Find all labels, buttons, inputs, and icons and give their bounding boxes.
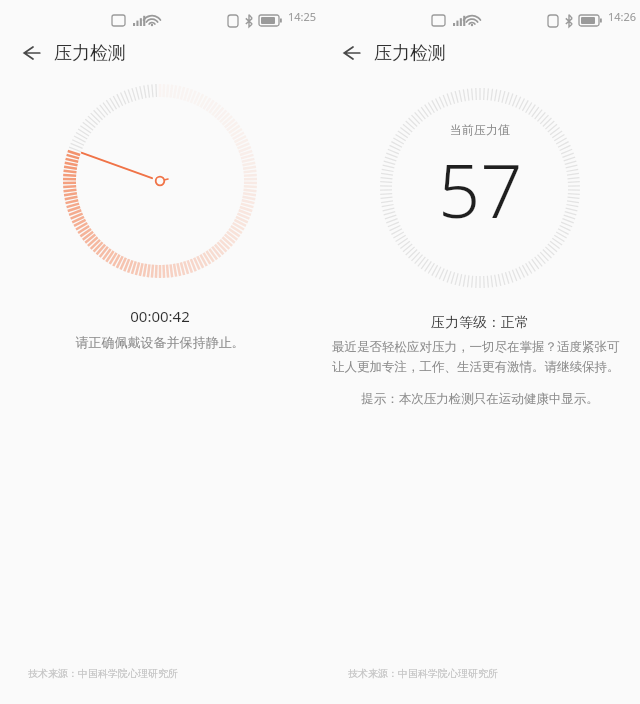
staticText: 14:25: [288, 9, 317, 24]
staticText: 技术来源：中国科学院心理研究所: [348, 667, 640, 680]
staticText: 压力等级：正常: [320, 314, 640, 332]
staticText: 14:26: [608, 9, 637, 24]
staticText: 技术来源：中国科学院心理研究所: [28, 667, 320, 680]
staticText: 57: [438, 139, 523, 240]
button[interactable]: 返回: [334, 36, 368, 70]
staticText: 压力检测: [54, 42, 126, 65]
staticText: 00:00:42: [0, 306, 320, 326]
button[interactable]: 返回: [14, 36, 48, 70]
staticText: 提示：本次压力检测只在运动健康中显示。: [320, 391, 640, 407]
staticText: 当前压力值: [450, 122, 510, 137]
staticText: 压力检测: [374, 42, 446, 65]
staticText: 请正确佩戴设备并保持静止。: [0, 334, 320, 350]
staticText: 最近是否轻松应对压力，一切尽在掌握？适度紧张可让人更加专注，工作、生活更有激情。…: [332, 339, 628, 375]
